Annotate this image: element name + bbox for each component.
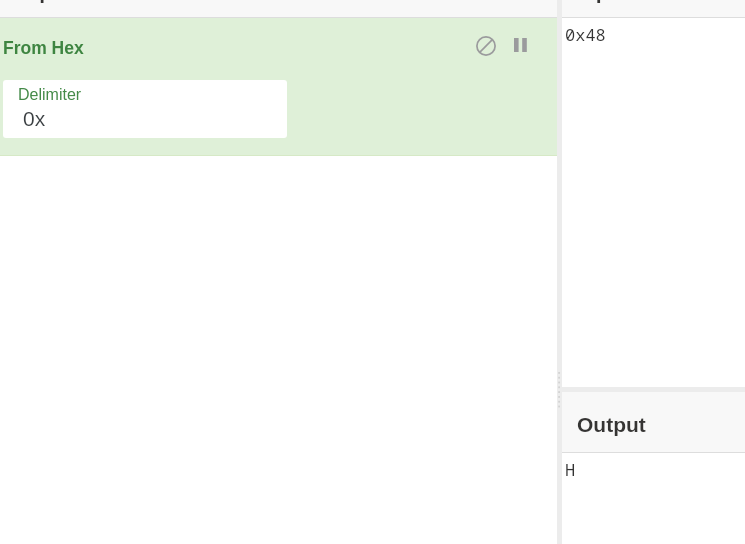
- staticText: 0x: [23, 107, 46, 130]
- staticText: Output: [577, 413, 646, 436]
- button[interactable]: Output: [562, 392, 745, 452]
- staticText: Input: [577, 0, 629, 3]
- button[interactable]: From Hex: [0, 18, 557, 155]
- button[interactable]: Recipe: [0, 0, 557, 17]
- button[interactable]: H: [562, 453, 745, 544]
- button[interactable]: Set breakpoint: [507, 31, 534, 58]
- button[interactable]: 0x48: [562, 18, 745, 387]
- button[interactable]: Input: [562, 0, 745, 17]
- staticText: Delimiter: [18, 86, 82, 104]
- staticText: 0x48: [565, 23, 606, 46]
- button[interactable]: Delimiter: [3, 80, 287, 138]
- staticText: H: [565, 458, 576, 481]
- button[interactable]: Disable operation: [471, 31, 500, 60]
- staticText: From Hex: [3, 38, 84, 58]
- staticText: Recipe: [0, 0, 64, 3]
